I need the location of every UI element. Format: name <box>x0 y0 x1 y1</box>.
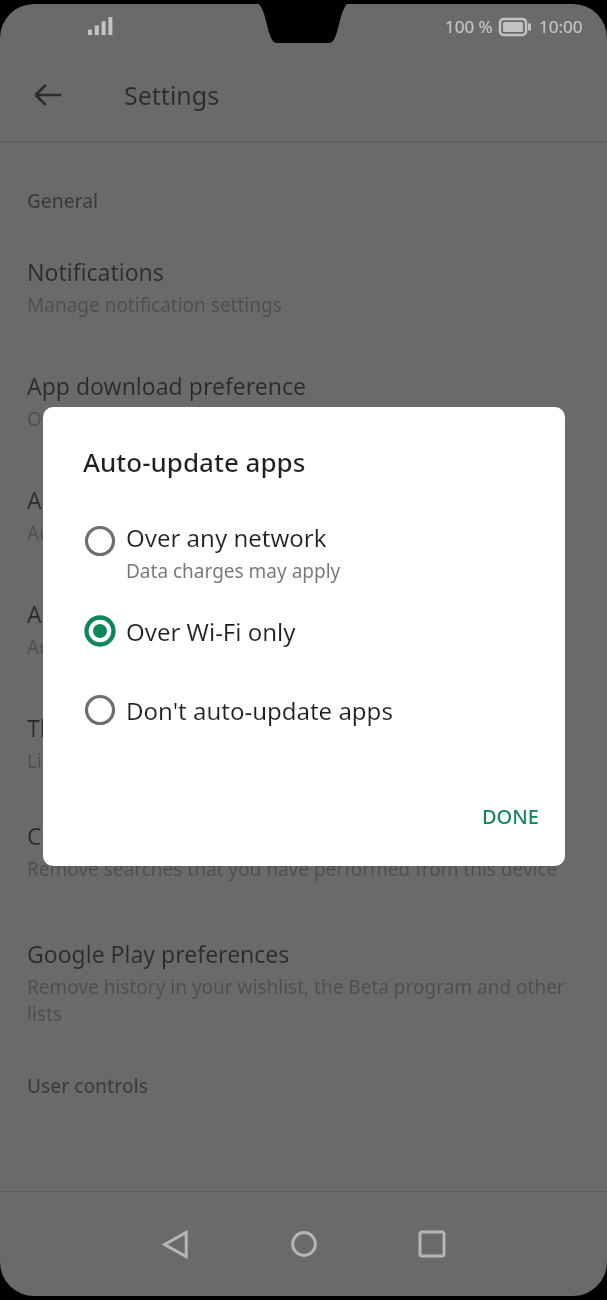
staticText: Clear local search history <box>27 820 297 851</box>
staticText: Light <box>27 748 73 774</box>
button[interactable]: Don't auto-update apps <box>43 689 565 731</box>
staticText: General <box>27 188 99 214</box>
staticText: Notifications <box>27 256 164 287</box>
staticText: Auto-play videos <box>27 598 206 629</box>
staticText: Theme <box>27 712 102 743</box>
button[interactable]: App download preference <box>0 370 607 432</box>
button[interactable]: Google Play preferences <box>0 938 607 1027</box>
button[interactable]: Over Wi-Fi only <box>43 610 565 652</box>
button[interactable]: Back <box>140 1208 212 1280</box>
staticText: Google Play preferences <box>27 938 290 969</box>
staticText: Over Wi-Fi only <box>126 615 296 648</box>
staticText: Manage notification settings <box>27 292 282 318</box>
staticText: Auto-update apps <box>83 444 306 479</box>
button[interactable]: Recents <box>396 1208 468 1280</box>
button[interactable]: Notifications <box>0 256 607 318</box>
staticText: Settings <box>124 78 220 112</box>
button[interactable]: Home <box>268 1208 340 1280</box>
staticText: Remove history in your wishlist, the Bet… <box>27 974 580 1027</box>
staticText: User controls <box>27 1073 148 1099</box>
button[interactable]: Theme <box>0 712 607 774</box>
button[interactable]: DONE <box>456 789 565 844</box>
staticText: DONE <box>482 803 539 830</box>
staticText: Auto-update apps over Wi-Fi only <box>27 520 323 546</box>
staticText: Auto-update apps <box>27 484 221 515</box>
button[interactable]: Back <box>24 71 72 119</box>
staticText: Auto-play videos over Wi-Fi only <box>27 634 311 660</box>
button[interactable]: Clear local search history <box>0 820 607 882</box>
staticText: Don't auto-update apps <box>126 694 393 727</box>
staticText: 100 % <box>445 15 493 38</box>
button[interactable]: Over any network <box>43 517 565 588</box>
staticText: Data charges may apply <box>126 558 341 584</box>
staticText: Over any network <box>27 406 186 432</box>
staticText: Remove searches that you have performed … <box>27 856 558 882</box>
staticText: Over any network <box>126 521 327 554</box>
staticText: 10:00 <box>539 15 583 38</box>
button[interactable]: Auto-update apps <box>0 484 607 546</box>
staticText: App download preference <box>27 370 307 401</box>
button[interactable]: Auto-play videos <box>0 598 607 660</box>
